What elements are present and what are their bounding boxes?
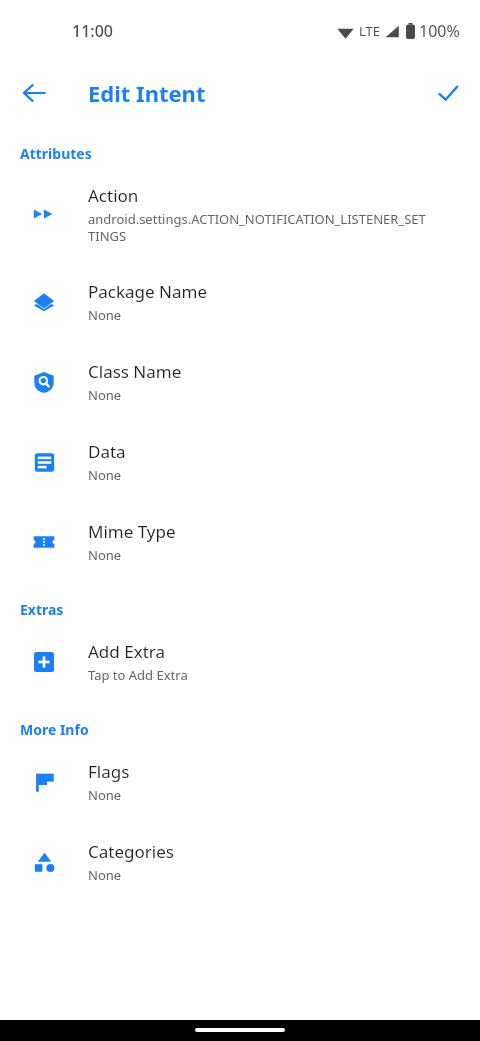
staticText: Mime Type xyxy=(88,520,176,543)
staticText: None xyxy=(88,466,122,484)
staticText: None xyxy=(88,306,122,324)
staticText: Action xyxy=(88,184,139,207)
staticText: 100% xyxy=(419,20,460,42)
staticText: Add Extra xyxy=(88,640,165,663)
staticText: LTE xyxy=(359,22,381,40)
staticText: Class Name xyxy=(88,360,182,383)
button[interactable]: Categories xyxy=(0,822,480,902)
button[interactable]: Flags xyxy=(0,742,480,822)
button[interactable]: Package Name xyxy=(0,262,480,342)
staticText: Tap to Add Extra xyxy=(88,666,188,684)
staticText: Extras xyxy=(20,600,64,619)
staticText: None xyxy=(88,866,122,884)
staticText: None xyxy=(88,786,122,804)
staticText: Data xyxy=(88,440,126,463)
button[interactable]: Back xyxy=(10,69,58,117)
button[interactable]: Class Name xyxy=(0,342,480,422)
staticText: android.settings.ACTION_NOTIFICATION_LIS… xyxy=(88,210,426,245)
staticText: None xyxy=(88,546,122,564)
button[interactable]: Data xyxy=(0,422,480,502)
button[interactable]: Add Extra xyxy=(0,622,480,702)
staticText: Categories xyxy=(88,840,174,863)
staticText: 11:00 xyxy=(72,20,113,42)
staticText: Edit Intent xyxy=(88,78,206,108)
staticText: More Info xyxy=(20,720,89,739)
button[interactable]: Action xyxy=(0,166,480,262)
staticText: Attributes xyxy=(20,144,92,163)
button[interactable]: Save xyxy=(424,69,472,117)
staticText: Flags xyxy=(88,760,130,783)
staticText: None xyxy=(88,386,122,404)
staticText: Package Name xyxy=(88,280,207,303)
button[interactable]: Mime Type xyxy=(0,502,480,582)
